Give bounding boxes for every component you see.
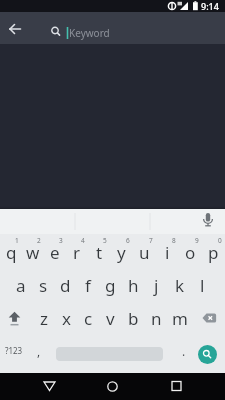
button[interactable]: j xyxy=(145,267,168,300)
staticText: r xyxy=(73,241,81,264)
staticText: s xyxy=(39,274,48,297)
staticText: m xyxy=(172,307,188,330)
staticText: ?123 xyxy=(5,345,23,356)
button[interactable]: 6 xyxy=(110,234,133,267)
staticText: 2 xyxy=(37,236,41,245)
staticText: x xyxy=(62,307,71,330)
staticText: 1 xyxy=(15,236,19,245)
button[interactable]: n xyxy=(145,300,168,333)
button[interactable] xyxy=(36,373,63,400)
staticText: y xyxy=(117,241,126,264)
staticText: q xyxy=(6,241,17,264)
button[interactable] xyxy=(4,19,26,39)
button[interactable]: b xyxy=(122,300,145,333)
button[interactable]: k xyxy=(168,267,191,300)
button[interactable]: 8 xyxy=(156,234,179,267)
staticText: o xyxy=(185,241,196,264)
staticText: f xyxy=(85,274,91,297)
button[interactable]: 0 xyxy=(202,234,225,267)
staticText: 9 xyxy=(195,236,199,245)
button[interactable]: , xyxy=(28,333,50,366)
button[interactable]: a xyxy=(10,267,32,300)
button[interactable]: v xyxy=(99,300,122,333)
button[interactable]: h xyxy=(122,267,145,300)
button[interactable]: s xyxy=(32,267,54,300)
staticText: 7 xyxy=(149,236,153,245)
staticText: 6 xyxy=(126,236,130,245)
staticText: 9:14 xyxy=(201,0,219,12)
staticText: 4 xyxy=(81,236,85,245)
staticText: t xyxy=(96,241,103,264)
staticText: j xyxy=(154,274,159,297)
staticText: e xyxy=(50,241,60,264)
staticText: Keyword xyxy=(69,26,110,40)
button[interactable]: 2 xyxy=(22,234,44,267)
button[interactable]: x xyxy=(55,300,77,333)
staticText: k xyxy=(175,274,185,297)
staticText: w xyxy=(26,241,40,264)
staticText: 3 xyxy=(59,236,63,245)
button[interactable]: l xyxy=(191,267,214,300)
button[interactable] xyxy=(163,373,190,400)
button[interactable]: 7 xyxy=(133,234,156,267)
staticText: , xyxy=(37,343,41,359)
button[interactable]: ?123 xyxy=(0,333,28,366)
staticText: b xyxy=(128,307,139,330)
button[interactable]: c xyxy=(77,300,99,333)
staticText: a xyxy=(16,274,26,297)
button[interactable]: 4 xyxy=(66,234,88,267)
button[interactable] xyxy=(198,345,217,364)
button[interactable]: f xyxy=(76,267,99,300)
staticText: . xyxy=(182,343,186,359)
button[interactable]: . xyxy=(173,333,195,366)
button[interactable] xyxy=(99,373,126,400)
staticText: l xyxy=(200,274,205,297)
staticText: 5 xyxy=(103,236,107,245)
staticText: g xyxy=(105,274,116,297)
staticText: n xyxy=(151,307,162,330)
staticText: p xyxy=(208,241,219,264)
button[interactable]: 9 xyxy=(179,234,202,267)
button[interactable]: z xyxy=(33,300,55,333)
staticText: d xyxy=(60,274,71,297)
button[interactable]: g xyxy=(99,267,122,300)
button[interactable] xyxy=(0,300,33,333)
button[interactable]: Keyword xyxy=(46,15,221,43)
button[interactable]: d xyxy=(54,267,76,300)
staticText: h xyxy=(128,274,139,297)
staticText: c xyxy=(84,307,93,330)
staticText: u xyxy=(139,241,150,264)
staticText: z xyxy=(40,307,48,330)
button[interactable]: 1 xyxy=(0,234,22,267)
button[interactable]: m xyxy=(168,300,191,333)
button[interactable] xyxy=(198,210,218,230)
staticText: v xyxy=(106,307,115,330)
staticText: 0 xyxy=(218,236,222,245)
staticText: 8 xyxy=(172,236,176,245)
button[interactable] xyxy=(191,300,225,333)
button[interactable]: 3 xyxy=(44,234,66,267)
button[interactable]: 5 xyxy=(88,234,110,267)
staticText: i xyxy=(165,241,170,264)
